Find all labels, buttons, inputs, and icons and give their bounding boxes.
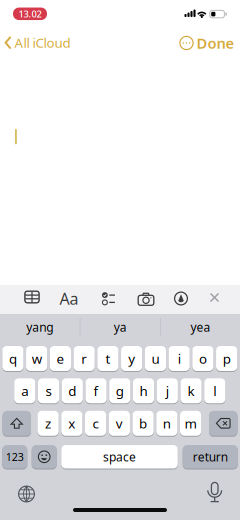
button[interactable]: g: [109, 378, 130, 404]
staticText: k: [188, 382, 195, 400]
button[interactable]: p: [216, 345, 237, 371]
staticText: a: [21, 382, 28, 400]
button[interactable]: [32, 445, 57, 469]
staticText: b: [139, 414, 147, 432]
staticText: yea: [190, 319, 210, 335]
staticText: Done: [196, 33, 234, 53]
button[interactable]: c: [85, 410, 106, 436]
staticText: n: [163, 414, 171, 432]
button[interactable]: e: [50, 345, 71, 371]
button[interactable]: y: [121, 345, 142, 371]
button[interactable]: [17, 282, 47, 311]
staticText: return: [193, 449, 228, 465]
button[interactable]: [12, 480, 40, 508]
staticText: r: [81, 350, 87, 367]
staticText: h: [140, 382, 148, 400]
staticText: f: [93, 382, 98, 400]
staticText: s: [45, 382, 51, 400]
button[interactable]: All iCloud: [3, 35, 71, 50]
button[interactable]: r: [74, 345, 95, 371]
button[interactable]: 13.02: [13, 8, 47, 20]
staticText: c: [93, 414, 99, 432]
button[interactable]: [209, 410, 237, 436]
button[interactable]: m: [180, 410, 201, 436]
staticText: i: [178, 350, 181, 367]
staticText: yang: [26, 319, 53, 335]
button[interactable]: k: [180, 378, 202, 404]
staticText: u: [151, 350, 159, 367]
staticText: y: [128, 350, 135, 367]
staticText: d: [68, 382, 76, 400]
button[interactable]: yang: [0, 314, 80, 340]
button[interactable]: u: [145, 345, 166, 371]
staticText: t: [105, 350, 110, 367]
staticText: 13.02: [18, 8, 41, 20]
button[interactable]: f: [85, 378, 107, 404]
button[interactable]: d: [62, 378, 83, 404]
button[interactable]: h: [133, 378, 154, 404]
button[interactable]: space: [61, 445, 178, 469]
button[interactable]: ya: [80, 314, 160, 340]
button[interactable]: t: [97, 345, 118, 371]
staticText: 123: [6, 450, 24, 464]
button[interactable]: v: [109, 410, 130, 436]
button[interactable]: x: [61, 410, 82, 436]
button[interactable]: j: [157, 378, 178, 404]
button[interactable]: [166, 284, 196, 313]
button[interactable]: yea: [161, 314, 240, 340]
button[interactable]: a: [14, 378, 35, 404]
button[interactable]: o: [192, 345, 213, 371]
button[interactable]: q: [2, 345, 23, 371]
staticText: space: [103, 449, 136, 465]
button[interactable]: [178, 34, 195, 51]
button[interactable]: s: [38, 378, 59, 404]
staticText: o: [199, 350, 207, 367]
staticText: x: [68, 414, 75, 432]
staticText: z: [45, 414, 51, 432]
staticText: p: [223, 350, 231, 367]
staticText: m: [185, 414, 197, 432]
staticText: e: [56, 350, 64, 367]
staticText: ya: [114, 319, 127, 335]
button[interactable]: [93, 284, 123, 313]
button[interactable]: [201, 478, 229, 506]
button[interactable]: 123: [2, 445, 27, 469]
staticText: Aa: [59, 288, 78, 309]
staticText: w: [32, 350, 42, 367]
staticText: l: [213, 382, 216, 400]
staticText: g: [116, 382, 124, 400]
button[interactable]: [2, 410, 31, 436]
button[interactable]: Done: [194, 34, 236, 52]
button[interactable]: return: [183, 445, 238, 469]
staticText: q: [9, 350, 17, 367]
button[interactable]: Aa: [54, 284, 84, 313]
button[interactable]: w: [26, 345, 47, 371]
button[interactable]: b: [132, 410, 154, 436]
staticText: j: [166, 382, 169, 400]
button[interactable]: n: [156, 410, 177, 436]
staticText: v: [116, 414, 123, 432]
button[interactable]: l: [204, 378, 225, 404]
button[interactable]: i: [169, 345, 190, 371]
button[interactable]: z: [37, 410, 59, 436]
button[interactable]: [201, 283, 227, 312]
button[interactable]: [130, 285, 162, 314]
staticText: All iCloud: [14, 34, 70, 51]
